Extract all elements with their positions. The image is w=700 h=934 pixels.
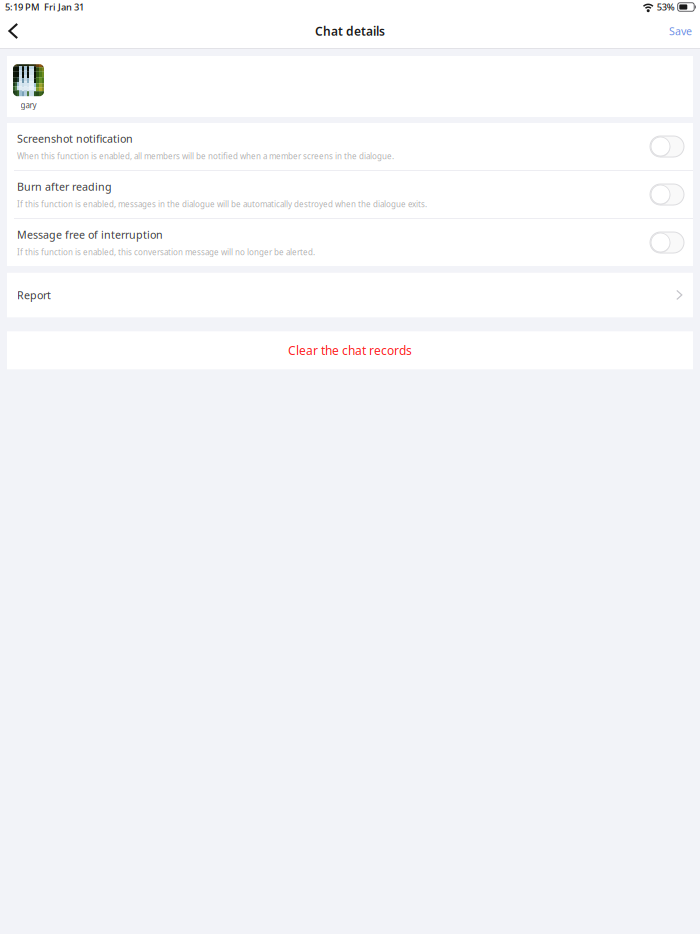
staticText: Clear the chat records: [288, 342, 412, 358]
button[interactable]: Screenshot notification: [7, 123, 693, 170]
staticText: gary: [20, 100, 36, 110]
staticText: Fri Jan 31: [44, 1, 84, 13]
button[interactable]: Message free of interruption: [7, 219, 693, 266]
staticText: Chat details: [315, 23, 385, 39]
staticText: Burn after reading: [17, 180, 112, 194]
staticText: Message free of interruption: [17, 228, 163, 242]
button[interactable]: Report: [7, 273, 693, 317]
staticText: 53%: [657, 1, 675, 13]
button[interactable]: gary: [7, 56, 52, 117]
staticText: 5:19 PM: [5, 1, 40, 13]
staticText: Screenshot notification: [17, 132, 133, 146]
button[interactable]: Burn after reading: [7, 171, 693, 218]
staticText: If this function is enabled, messages in…: [17, 199, 427, 209]
button[interactable]: Save: [655, 14, 700, 48]
staticText: When this function is enabled, all membe…: [17, 151, 394, 161]
staticText: Save: [669, 24, 692, 38]
button[interactable]: Clear the chat records: [7, 331, 693, 369]
staticText: If this function is enabled, this conver…: [17, 247, 315, 257]
staticText: Report: [17, 288, 51, 302]
button[interactable]: Back: [0, 14, 33, 48]
